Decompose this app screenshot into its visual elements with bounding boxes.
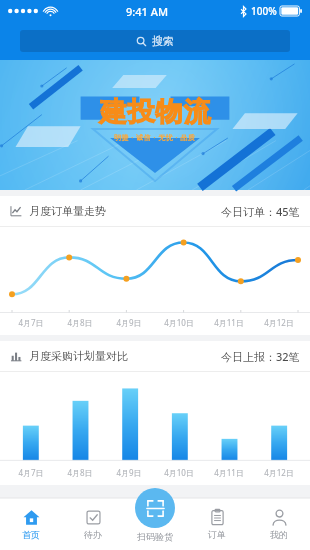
button[interactable]: 我的 [248, 498, 310, 550]
staticText: 我的 [270, 529, 288, 540]
staticText: 4月8日 [67, 467, 93, 478]
staticText: 4月11日 [214, 317, 244, 328]
staticText: 4月11日 [214, 467, 244, 478]
staticText: 建投物流 [99, 95, 211, 129]
staticText: 4月10日 [164, 467, 194, 478]
staticText: 月度采购计划量对比 [29, 349, 128, 363]
staticText: 待办 [84, 529, 102, 540]
staticText: 4月10日 [164, 317, 194, 328]
staticText: 今日订单：45笔 [221, 204, 300, 219]
staticText: 4月7日 [18, 317, 44, 328]
staticText: 月度订单量走势 [29, 204, 106, 218]
staticText: 9:41 AM [126, 4, 169, 19]
button[interactable]: 搜索 [20, 30, 290, 52]
staticText: 100% [251, 4, 277, 18]
staticText: 4月9日 [116, 317, 142, 328]
staticText: 搜索 [152, 34, 174, 48]
staticText: 4月8日 [67, 317, 93, 328]
staticText: 今日上报：32笔 [221, 349, 300, 364]
button[interactable]: 扫码验货 [124, 488, 186, 550]
staticText: 首页 [22, 529, 40, 540]
button[interactable]: 首页 [0, 498, 62, 550]
staticText: 4月7日 [18, 467, 44, 478]
button[interactable]: 待办 [62, 498, 124, 550]
staticText: 扫码验货 [137, 531, 173, 542]
staticText: 明捷 · 诚信 · 无忧 · 品质 [114, 133, 196, 143]
button[interactable]: 订单 [186, 498, 248, 550]
staticText: 订单 [208, 529, 226, 540]
staticText: 4月9日 [116, 467, 142, 478]
staticText: 4月12日 [264, 317, 294, 328]
staticText: 4月12日 [264, 467, 294, 478]
